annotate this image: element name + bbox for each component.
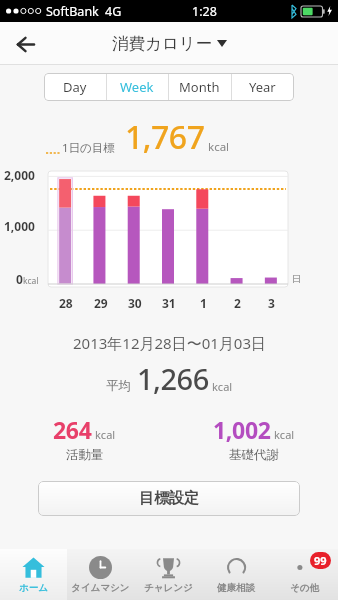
staticText: 日	[292, 273, 302, 285]
staticText: 健康相談	[217, 582, 255, 594]
staticText: kcal	[212, 379, 233, 394]
staticText: 30	[128, 295, 142, 311]
staticText: 2	[234, 295, 241, 311]
staticText: 29	[94, 295, 108, 311]
staticText: Week	[120, 78, 154, 96]
staticText: Day	[63, 78, 87, 96]
staticText: 平均	[106, 378, 131, 394]
button[interactable]: 99	[270, 549, 338, 600]
button[interactable]: 健康相談	[202, 549, 270, 600]
staticText: kcal	[208, 139, 230, 155]
staticText: タイムマシン	[71, 582, 130, 594]
staticText: 99	[314, 553, 327, 568]
staticText: kcal	[23, 275, 39, 287]
staticText: 1	[200, 295, 207, 311]
button[interactable]: Day	[44, 73, 106, 101]
staticText: kcal	[274, 427, 295, 442]
staticText: 基礎代謝	[229, 447, 279, 463]
staticText: Month	[179, 78, 220, 96]
staticText: 2013年12月28日〜01月03日	[73, 333, 266, 353]
button[interactable]: ホーム	[0, 549, 67, 600]
button[interactable]: 目標設定	[38, 481, 300, 516]
button[interactable]: Back	[6, 25, 44, 63]
button[interactable]: タイムマシン	[67, 549, 134, 600]
staticText: Year	[249, 78, 276, 96]
button[interactable]: Week	[106, 73, 168, 101]
staticText: 3	[268, 295, 275, 311]
button[interactable]: Month	[168, 73, 231, 101]
staticText: 2,000	[4, 167, 35, 183]
staticText: 264	[53, 414, 92, 445]
staticText: 4G	[105, 3, 122, 20]
staticText: 1,266	[137, 359, 209, 398]
staticText: 目標設定	[139, 489, 199, 508]
staticText: 活動量	[66, 447, 104, 463]
staticText: ホーム	[19, 582, 48, 594]
staticText: kcal	[95, 427, 116, 442]
staticText: 消費カロリー	[112, 33, 213, 54]
staticText: 1:28	[192, 3, 217, 20]
button[interactable]: チャレンジ	[134, 549, 202, 600]
staticText: その他	[290, 582, 319, 594]
staticText: 0	[16, 271, 23, 287]
staticText: 1,000	[4, 218, 35, 234]
staticText: 28	[59, 295, 73, 311]
button[interactable]: 消費カロリー	[112, 33, 227, 54]
staticText: 1日の目標	[62, 140, 115, 156]
staticText: 1,767	[125, 115, 205, 159]
button[interactable]: Year	[231, 73, 294, 101]
staticText: SoftBank	[46, 3, 99, 20]
staticText: チャレンジ	[144, 582, 193, 594]
staticText: 1,002	[213, 414, 271, 445]
staticText: 31	[162, 295, 176, 311]
